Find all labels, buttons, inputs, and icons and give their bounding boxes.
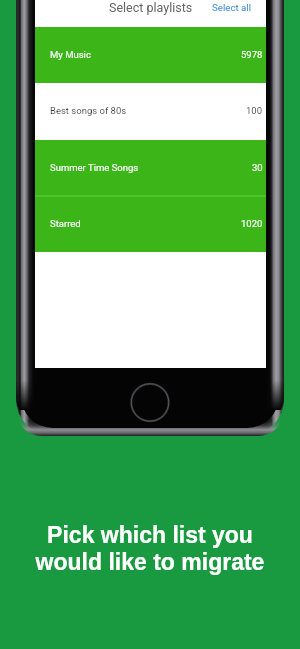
button[interactable]: Best songs of 80s [35, 83, 266, 140]
button[interactable]: Select all [212, 2, 266, 13]
staticText: Starred [50, 218, 81, 229]
staticText: Pick which list you would like to migrat… [0, 522, 300, 575]
staticText: Best songs of 80s [50, 105, 127, 116]
staticText: Summer Time Songs [50, 162, 139, 173]
button[interactable]: My Music [35, 27, 266, 84]
staticText: 1020 [241, 218, 263, 229]
staticText: 100 [246, 105, 263, 116]
staticText: Select playlists [109, 0, 193, 15]
button[interactable]: Summer Time Songs [35, 140, 266, 197]
staticText: My Music [50, 49, 91, 60]
staticText: Select all [212, 2, 252, 13]
button[interactable]: Starred [35, 196, 266, 252]
staticText: 30 [252, 162, 263, 173]
staticText: 5978 [241, 49, 263, 60]
